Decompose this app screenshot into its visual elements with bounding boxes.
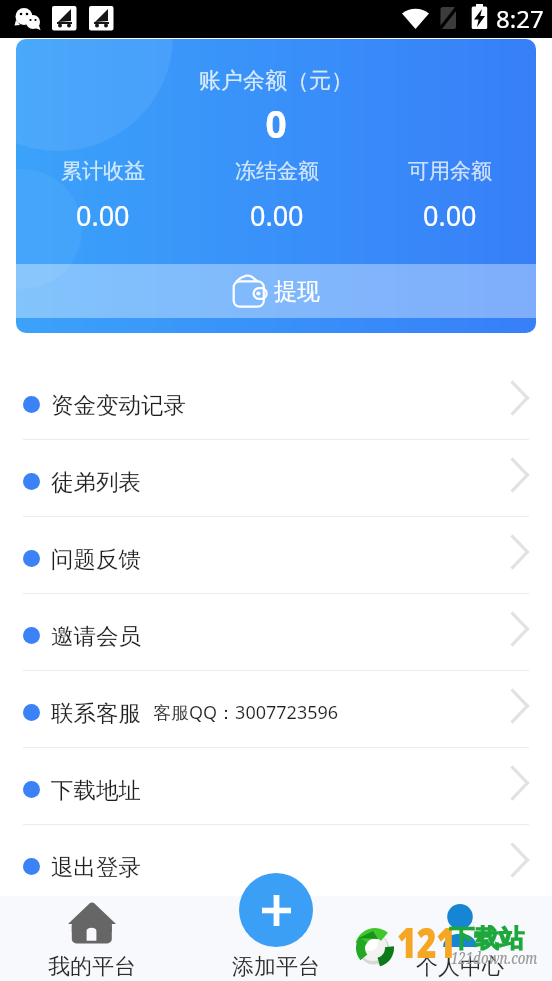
button[interactable]: 添加平台 (184, 896, 368, 981)
staticText: 0.00 (423, 197, 477, 234)
staticText: 提现 (274, 277, 320, 306)
staticText: 问题反馈 (51, 545, 141, 573)
button[interactable]: 个人中心 (368, 896, 552, 981)
staticText: 下载站 (449, 923, 524, 954)
button[interactable]: 徒弟列表 (0, 440, 552, 517)
button[interactable]: 下载地址 (0, 748, 552, 825)
button[interactable]: 联系客服 (0, 671, 552, 748)
staticText: 联系客服 (51, 699, 141, 727)
button[interactable]: 资金变动记录 (0, 363, 552, 440)
staticText: 客服QQ：3007723596 (153, 700, 339, 725)
staticText: 我的平台 (48, 953, 136, 981)
button[interactable]: 提现 (16, 264, 536, 318)
staticText: 添加平台 (232, 953, 320, 981)
staticText: 冻结金额 (235, 158, 319, 184)
staticText: 个人中心 (416, 953, 504, 981)
staticText: 累计收益 (61, 158, 145, 184)
staticText: 8:27 (496, 2, 544, 35)
staticText: 资金变动记录 (51, 391, 186, 419)
staticText: 121down.com (451, 947, 538, 969)
staticText: 0.00 (76, 197, 130, 234)
staticText: 0 (16, 98, 536, 148)
button[interactable]: 添加平台 (239, 873, 313, 947)
staticText: 账户余额（元） (16, 67, 536, 95)
staticText: 0.00 (250, 197, 304, 234)
staticText: 邀请会员 (51, 622, 141, 650)
staticText: 徒弟列表 (51, 468, 141, 496)
staticText: 可用余额 (408, 158, 492, 184)
button[interactable]: 退出登录 (0, 825, 552, 902)
button[interactable]: 我的平台 (0, 896, 184, 981)
staticText: 退出登录 (51, 853, 141, 881)
button[interactable]: 邀请会员 (0, 594, 552, 671)
button[interactable]: 问题反馈 (0, 517, 552, 594)
staticText: 121 (397, 912, 456, 971)
staticText: 下载地址 (51, 776, 141, 804)
